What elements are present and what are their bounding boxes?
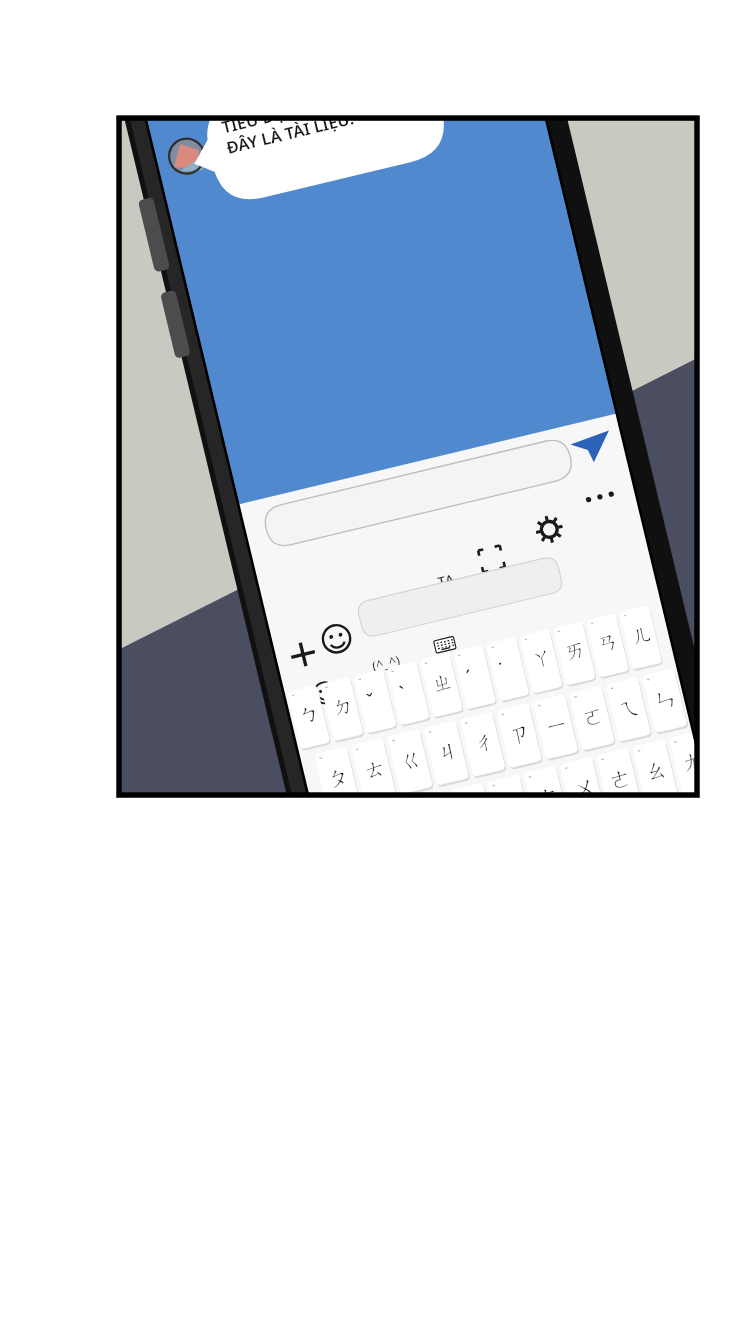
button[interactable]: Comic panel: messaging app on a phone [0,0,731,1340]
